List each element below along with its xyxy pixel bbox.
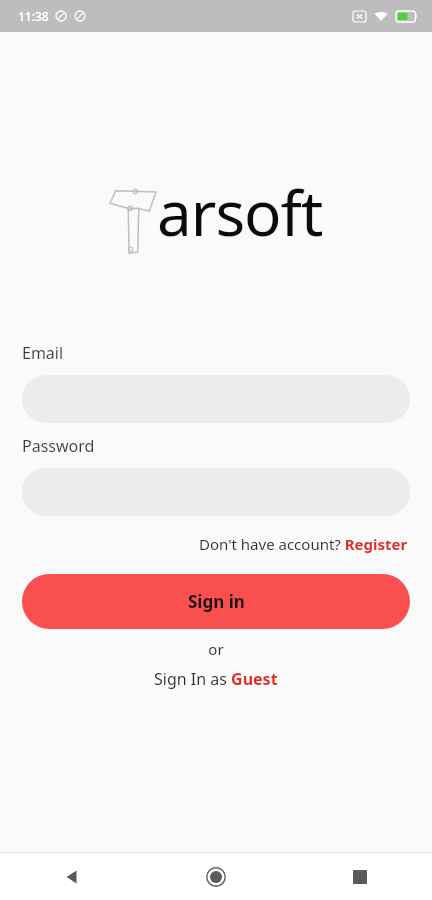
staticText: Password [22, 435, 95, 457]
button[interactable]: Recent apps [288, 853, 432, 900]
staticText: arsoft [157, 170, 323, 254]
button[interactable]: Home [144, 853, 288, 900]
button[interactable]: Sign In as Guest [150, 666, 282, 692]
staticText: Email [22, 342, 64, 364]
staticText: Sign In as Guest [154, 668, 278, 690]
staticText: Don't have account? Register [199, 534, 408, 554]
staticText: Sign in [188, 590, 245, 613]
button[interactable]: Back [0, 853, 144, 900]
button[interactable]: Don't have account? Register [197, 532, 410, 556]
staticText: 11:38 [18, 8, 49, 24]
staticText: or [22, 639, 410, 659]
button[interactable]: Sign in [22, 574, 410, 629]
